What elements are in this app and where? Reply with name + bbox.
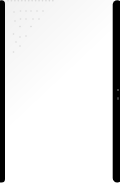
button[interactable]: Power [117,97,119,100]
button[interactable] [6,5,112,55]
button[interactable] [6,0,112,5]
